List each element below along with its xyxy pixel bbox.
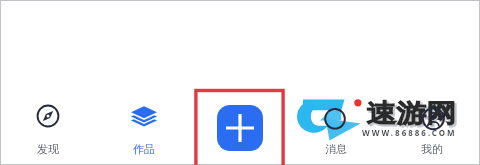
staticText: 速游网 xyxy=(368,100,458,132)
button[interactable]: 发现 xyxy=(0,96,96,162)
staticText: 发现 xyxy=(37,142,59,156)
button[interactable]: 作品 xyxy=(96,96,192,162)
staticText: 消息 xyxy=(325,142,347,156)
staticText: WWW.86886.COM xyxy=(362,127,457,138)
button[interactable]: Create xyxy=(217,105,263,151)
staticText: 我的 xyxy=(421,142,443,156)
button[interactable]: 消息 xyxy=(288,96,384,162)
staticText: 速游网 xyxy=(366,98,456,130)
button[interactable]: 我的 xyxy=(384,96,480,162)
staticText: 作品 xyxy=(133,142,155,156)
